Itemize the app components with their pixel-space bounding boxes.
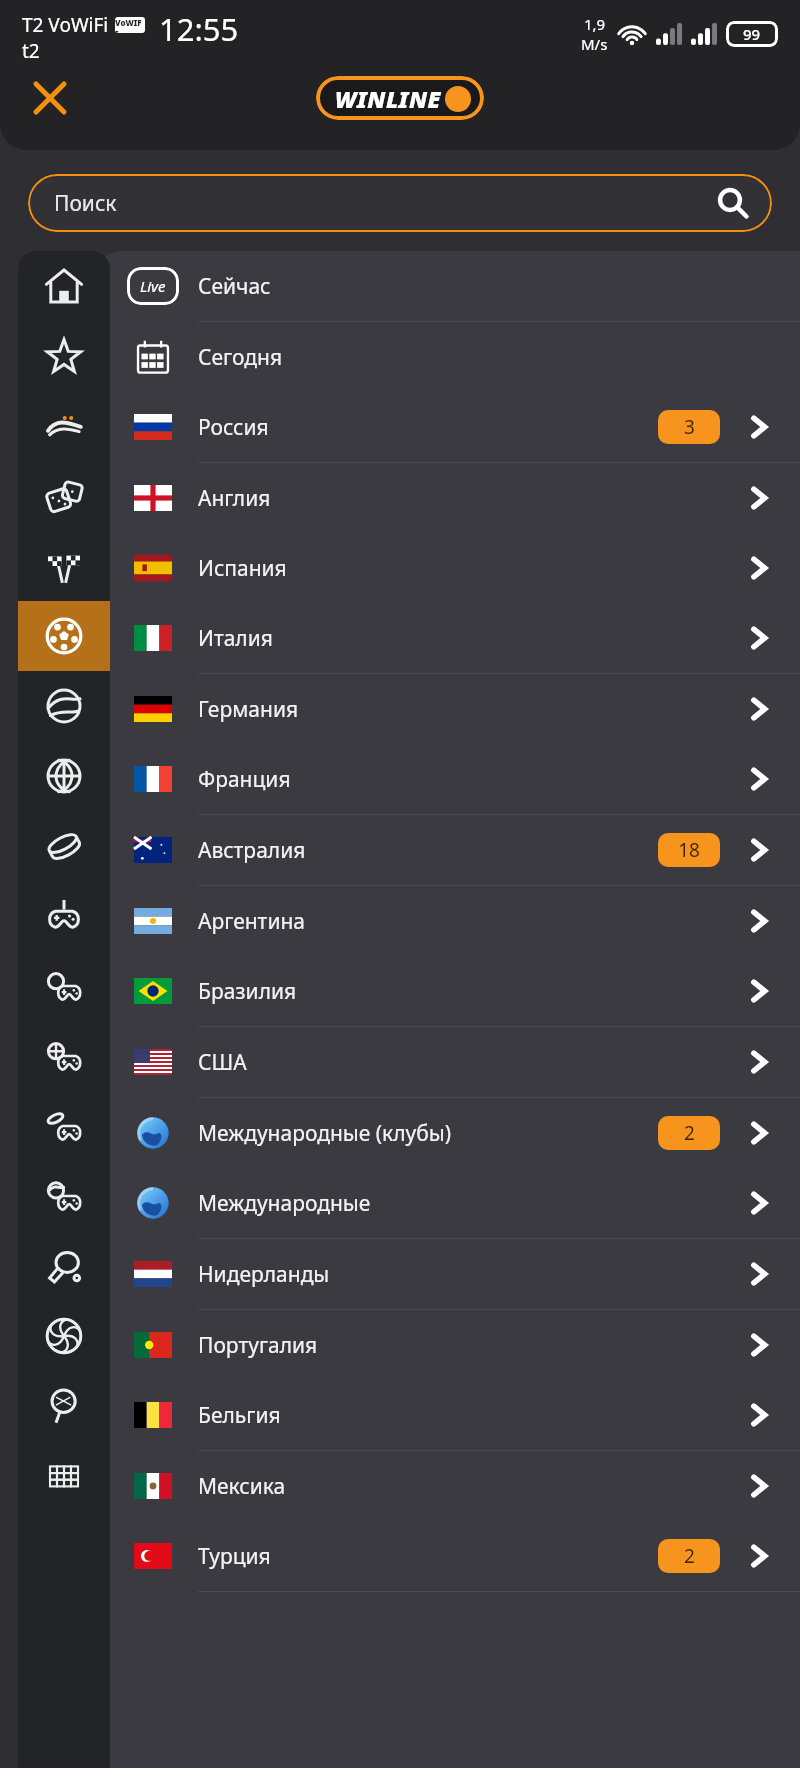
button[interactable]: Франция bbox=[100, 744, 800, 814]
staticText: 3 bbox=[684, 414, 695, 440]
button[interactable]: STAR bbox=[18, 321, 110, 391]
button[interactable]: Австралия bbox=[100, 815, 800, 885]
staticText: 2 bbox=[684, 1543, 695, 1569]
staticText: Live bbox=[140, 276, 166, 296]
button[interactable]: Италия bbox=[100, 603, 800, 673]
button[interactable]: Сегодня bbox=[100, 322, 800, 392]
button[interactable]: HANDBALL bbox=[18, 1441, 110, 1511]
staticText: Турция bbox=[198, 1542, 271, 1571]
staticText: 99 bbox=[743, 24, 761, 44]
button[interactable]: HOME bbox=[18, 251, 110, 321]
button[interactable]: Мексика bbox=[100, 1451, 800, 1521]
button[interactable]: Live bbox=[100, 251, 800, 321]
button[interactable]: EBASKET bbox=[18, 1021, 110, 1091]
staticText: США bbox=[198, 1048, 247, 1077]
staticText: t2 bbox=[22, 38, 40, 64]
button[interactable]: Россия bbox=[100, 392, 800, 462]
button[interactable]: ESOCCER bbox=[18, 951, 110, 1021]
staticText: Россия bbox=[198, 413, 269, 442]
staticText: 1,9 bbox=[584, 14, 606, 34]
button[interactable]: SCRIPT bbox=[18, 391, 110, 461]
button[interactable]: Международные bbox=[100, 1168, 800, 1238]
staticText: Австралия bbox=[198, 836, 306, 865]
staticText: 2 bbox=[684, 1120, 695, 1146]
staticText: T2 VoWiFi bbox=[22, 12, 109, 38]
button[interactable]: RACKET bbox=[18, 1371, 110, 1441]
button[interactable]: Поиск bbox=[28, 174, 772, 232]
button[interactable]: Аргентина bbox=[100, 886, 800, 956]
button[interactable]: Германия bbox=[100, 674, 800, 744]
staticText: Мексика bbox=[198, 1472, 286, 1501]
button[interactable]: PAD bbox=[18, 881, 110, 951]
button[interactable]: BASKET bbox=[18, 741, 110, 811]
button[interactable]: FLAGS bbox=[18, 531, 110, 601]
staticText: Португалия bbox=[198, 1331, 318, 1360]
button[interactable]: EHOCKEY bbox=[18, 1091, 110, 1161]
button[interactable]: Бразилия bbox=[100, 956, 800, 1026]
staticText: Бельгия bbox=[198, 1401, 281, 1430]
button[interactable]: Англия bbox=[100, 463, 800, 533]
button[interactable]: Турция bbox=[100, 1521, 800, 1591]
staticText: Германия bbox=[198, 695, 299, 724]
staticText: Англия bbox=[198, 484, 271, 513]
staticText: VoWIFI bbox=[115, 17, 145, 33]
staticText: 18 bbox=[678, 837, 700, 863]
staticText: Италия bbox=[198, 624, 273, 653]
button[interactable]: Закрыть bbox=[22, 70, 78, 126]
staticText: Международные bbox=[198, 1189, 371, 1218]
button[interactable]: WINLINE bbox=[316, 76, 484, 120]
button[interactable]: PUCK bbox=[18, 811, 110, 881]
staticText: 12:55 bbox=[159, 8, 239, 50]
staticText: Испания bbox=[198, 554, 287, 583]
staticText: Сейчас bbox=[198, 272, 271, 301]
staticText: Международные (клубы) bbox=[198, 1119, 452, 1148]
staticText: Бразилия bbox=[198, 977, 297, 1006]
staticText: Поиск bbox=[54, 189, 117, 218]
button[interactable]: Бельгия bbox=[100, 1380, 800, 1450]
button[interactable]: Португалия bbox=[100, 1310, 800, 1380]
staticText: Сегодня bbox=[198, 343, 283, 372]
button[interactable]: PINGPONG bbox=[18, 1231, 110, 1301]
button[interactable]: США bbox=[100, 1027, 800, 1097]
button[interactable]: Нидерланды bbox=[100, 1239, 800, 1309]
button[interactable]: SOCCER bbox=[18, 601, 110, 671]
button[interactable]: Испания bbox=[100, 533, 800, 603]
button[interactable]: VOLLEY bbox=[18, 1301, 110, 1371]
button[interactable]: Международные (клубы) bbox=[100, 1098, 800, 1168]
button[interactable]: ETENNIS bbox=[18, 1161, 110, 1231]
button[interactable]: DICE bbox=[18, 461, 110, 531]
staticText: WINLINE bbox=[335, 83, 441, 114]
button[interactable]: TENNIS bbox=[18, 671, 110, 741]
staticText: Франция bbox=[198, 765, 291, 794]
staticText: Нидерланды bbox=[198, 1260, 330, 1289]
staticText: M/s bbox=[581, 34, 608, 54]
staticText: Аргентина bbox=[198, 907, 305, 936]
